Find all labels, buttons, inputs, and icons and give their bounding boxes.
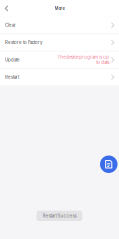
staticText: Restart Success xyxy=(42,213,76,218)
staticText: More xyxy=(54,6,64,11)
staticText: Update xyxy=(5,57,20,62)
staticText: Restart xyxy=(5,74,19,80)
button[interactable]: Restore to Factory xyxy=(0,34,119,51)
staticText: Restore to Factory xyxy=(5,40,42,45)
button[interactable]: Restart xyxy=(0,69,119,85)
staticText: The device program is up to date xyxy=(57,55,109,65)
button[interactable]: Report xyxy=(100,155,117,173)
button[interactable]: Update xyxy=(0,51,119,68)
button[interactable]: Back xyxy=(0,0,15,17)
button[interactable]: Clear xyxy=(0,17,119,34)
staticText: Clear xyxy=(5,23,16,28)
